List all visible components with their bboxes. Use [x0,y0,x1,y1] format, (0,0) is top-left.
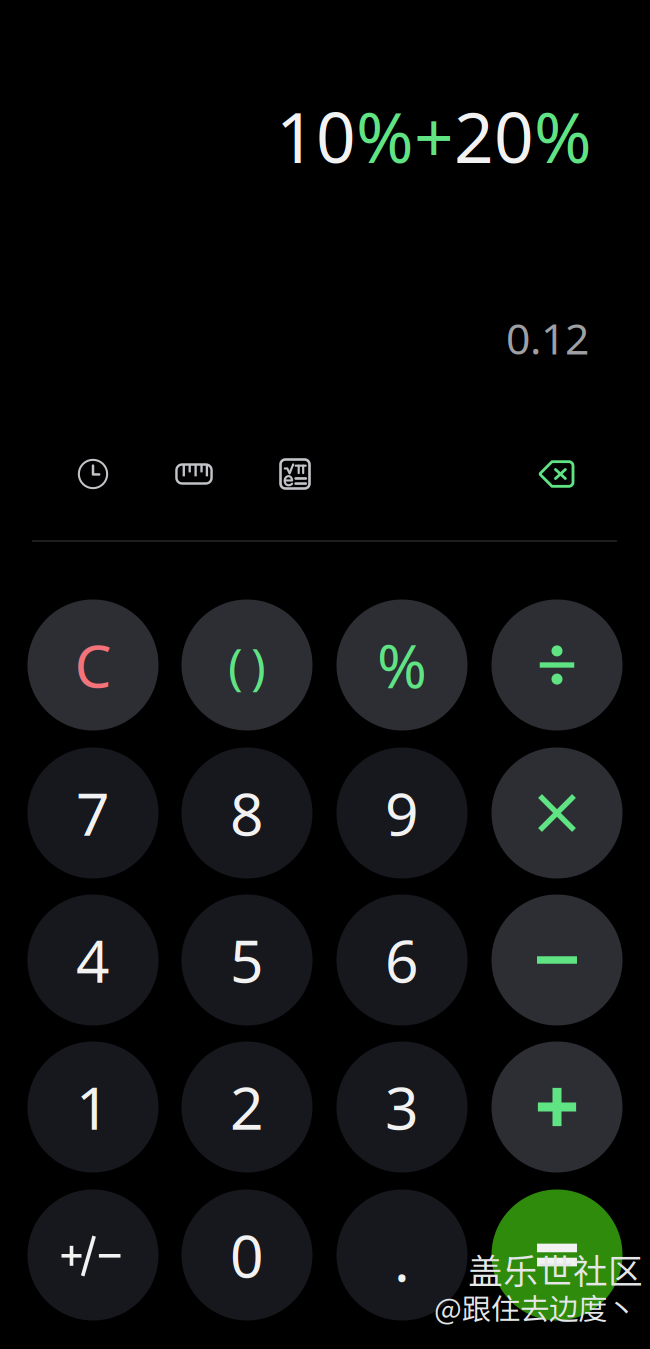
staticText: % [534,90,592,182]
button[interactable]: 4 [27,894,158,1025]
staticText: 10 [276,90,356,182]
button[interactable]: 0 [181,1189,312,1320]
button[interactable]: C [27,599,158,730]
button[interactable]: History [57,443,129,505]
staticText: 0 [230,1216,264,1294]
button[interactable]: Divide [491,599,622,730]
staticText: 20 [454,90,534,182]
button[interactable]: Backspace [521,443,593,505]
button[interactable]: ( ) [181,599,312,730]
button[interactable]: 8 [181,747,312,878]
staticText: ( ) [228,632,266,698]
button[interactable]: 5 [181,894,312,1025]
button[interactable]: Plus [491,1041,622,1172]
staticText: 3 [385,1068,419,1146]
staticText: 4 [76,921,110,999]
button[interactable]: 2 [181,1041,312,1172]
button[interactable]: Minus [491,894,622,1025]
button[interactable]: . [336,1189,467,1320]
staticText: 2 [230,1068,264,1146]
button[interactable]: 9 [336,747,467,878]
staticText: 1 [76,1068,110,1146]
staticText: 7 [76,774,110,852]
button[interactable]: Equals [491,1189,622,1320]
button[interactable]: Toggle sign [27,1189,158,1320]
staticText: . [394,1220,410,1298]
button[interactable]: 7 [27,747,158,878]
button[interactable]: Scientific calculator [259,443,331,505]
button[interactable]: 1 [27,1041,158,1172]
button[interactable]: 3 [336,1041,467,1172]
staticText: @跟住去边度丶 [434,1286,636,1328]
staticText: 9 [385,774,419,852]
staticText: 0.12 [506,310,589,366]
button[interactable]: % [336,599,467,730]
staticText: 盖乐世社区 [468,1244,643,1294]
button[interactable]: Unit converter [158,443,230,505]
staticText: C [74,626,111,704]
staticText: 8 [230,774,264,852]
staticText: %+ [356,90,454,182]
button[interactable]: Multiply [491,747,622,878]
staticText: 6 [385,921,419,999]
button[interactable]: 6 [336,894,467,1025]
staticText: % [377,625,427,705]
staticText: 5 [230,921,264,999]
